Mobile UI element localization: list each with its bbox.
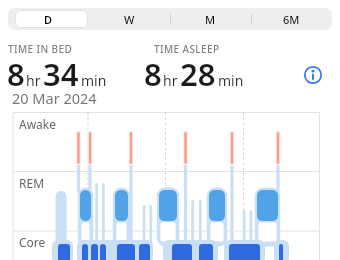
staticText: Awake — [19, 116, 57, 132]
staticText: min — [81, 71, 107, 90]
button[interactable]: 6M — [251, 8, 332, 30]
staticText: hr — [26, 71, 41, 90]
staticText: 20 Mar 2024 — [12, 88, 97, 108]
button[interactable] — [303, 65, 323, 85]
staticText: M — [205, 12, 216, 27]
staticText: REM — [19, 175, 45, 191]
staticText: W — [124, 12, 135, 27]
staticText: TIME IN BED — [8, 42, 73, 56]
staticText: 6M — [283, 12, 300, 27]
staticText: 8 — [7, 53, 25, 95]
button[interactable]: D — [8, 8, 89, 30]
staticText: hr — [163, 71, 178, 90]
staticText: 28 — [180, 53, 216, 95]
staticText: TIME ASLEEP — [154, 42, 220, 56]
button[interactable]: M — [170, 8, 251, 30]
staticText: min — [218, 71, 244, 90]
staticText: 8 — [144, 53, 162, 95]
staticText: Core — [19, 234, 46, 250]
staticText: D — [44, 12, 53, 27]
button[interactable]: W — [89, 8, 170, 30]
staticText: 34 — [43, 53, 79, 95]
